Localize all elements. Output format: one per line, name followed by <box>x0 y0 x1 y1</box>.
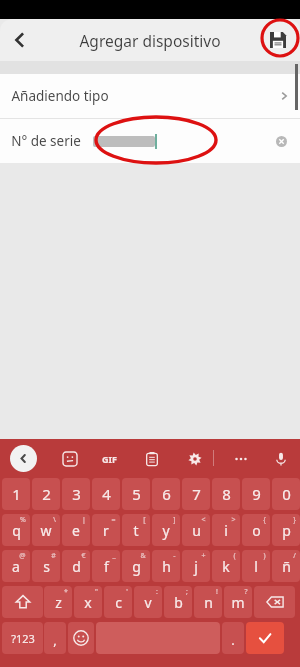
staticText: u <box>192 521 201 540</box>
button[interactable]: h <box>152 550 180 582</box>
button[interactable]: Back <box>0 20 40 60</box>
button[interactable]: Shift <box>2 586 43 618</box>
button[interactable]: m <box>224 586 252 618</box>
staticText: _ <box>112 551 116 561</box>
button[interactable]: 3 <box>62 478 90 510</box>
staticText: ? <box>244 587 248 597</box>
button[interactable]: f <box>92 550 120 582</box>
button[interactable]: x <box>74 586 102 618</box>
button[interactable]: 7 <box>182 478 210 510</box>
button[interactable]: y <box>152 514 180 546</box>
button[interactable]: d <box>62 550 90 582</box>
staticText: y <box>162 521 170 540</box>
staticText: Añadiendo tipo <box>11 87 109 105</box>
button[interactable]: n <box>194 586 222 618</box>
button[interactable]: 1 <box>2 478 30 510</box>
button[interactable]: N° de serie <box>0 119 300 163</box>
button[interactable]: ?123 <box>2 622 43 654</box>
staticText: z <box>55 593 62 612</box>
button[interactable]: w <box>32 514 60 546</box>
button[interactable]: l <box>242 550 270 582</box>
button[interactable]: 5 <box>122 478 150 510</box>
staticText: j <box>194 557 198 576</box>
button[interactable]: c <box>104 586 132 618</box>
button[interactable]: a <box>2 550 30 582</box>
staticText: 6 <box>162 484 171 504</box>
button[interactable]: j <box>182 550 210 582</box>
button[interactable]: GIF <box>96 446 122 472</box>
button[interactable]: Voice input <box>268 446 294 472</box>
staticText: < <box>201 515 206 525</box>
staticText: w <box>40 521 52 540</box>
button[interactable]: Clipboard <box>139 446 165 472</box>
staticText: ] <box>173 515 176 525</box>
button[interactable]: More options <box>228 446 254 472</box>
staticText: , <box>53 631 57 649</box>
staticText: a <box>12 557 20 576</box>
button[interactable]: Clear <box>270 130 292 152</box>
staticText: e <box>72 521 80 540</box>
button[interactable]: Collapse toolbar <box>10 445 37 472</box>
button[interactable]: . <box>222 622 244 654</box>
button[interactable]: Emoji <box>68 622 94 654</box>
button[interactable]: t <box>122 514 150 546</box>
button[interactable]: q <box>2 514 30 546</box>
staticText: c <box>115 593 122 612</box>
button[interactable]: z <box>44 586 72 618</box>
button[interactable]: Añadiendo tipo <box>0 74 300 118</box>
staticText: > <box>231 515 236 525</box>
button[interactable]: Stickers <box>57 446 83 472</box>
staticText: @ <box>19 551 26 561</box>
staticText: r <box>103 521 109 540</box>
staticText: 2 <box>42 484 51 504</box>
button[interactable]: 2 <box>32 478 60 510</box>
button[interactable]: 4 <box>92 478 120 510</box>
staticText: } <box>293 515 296 525</box>
staticText: k <box>222 557 230 576</box>
staticText: % <box>20 515 26 525</box>
staticText: * <box>64 587 68 597</box>
button[interactable]: 9 <box>242 478 270 510</box>
button[interactable]: o <box>242 514 270 546</box>
staticText: 3 <box>72 484 81 504</box>
staticText: f <box>104 557 109 576</box>
staticText: ! <box>216 587 218 597</box>
staticText: & <box>140 551 146 561</box>
staticText: 8 <box>222 484 231 504</box>
button[interactable]: 8 <box>212 478 240 510</box>
button[interactable]: k <box>212 550 240 582</box>
staticText: 9 <box>252 484 261 504</box>
button[interactable]: Enter <box>246 622 284 654</box>
button[interactable]: 0 <box>272 478 300 510</box>
staticText: \ <box>53 515 56 525</box>
staticText: 5 <box>132 484 141 504</box>
button[interactable]: r <box>92 514 120 546</box>
staticText: ?123 <box>11 631 35 646</box>
button[interactable]: i <box>212 514 240 546</box>
button[interactable]: 6 <box>152 478 180 510</box>
button[interactable]: Backspace <box>254 586 295 618</box>
staticText: € <box>81 551 86 561</box>
button[interactable]: e <box>62 514 90 546</box>
staticText: q <box>12 521 21 540</box>
staticText: [ <box>143 515 146 525</box>
staticText: n <box>204 593 213 612</box>
button[interactable]: u <box>182 514 210 546</box>
staticText: p <box>282 521 291 540</box>
button[interactable]: ñ <box>272 550 300 582</box>
button[interactable]: Save <box>258 20 298 60</box>
button[interactable]: s <box>32 550 60 582</box>
staticText: : <box>156 587 158 597</box>
button[interactable]: Settings <box>182 446 208 472</box>
staticText: Agregar dispositivo <box>79 30 221 51</box>
button[interactable]: g <box>122 550 150 582</box>
button[interactable]: b <box>164 586 192 618</box>
staticText: . <box>231 631 235 649</box>
staticText: 1 <box>12 484 21 504</box>
staticText: m <box>231 593 245 612</box>
button[interactable]: p <box>272 514 300 546</box>
button[interactable]: , <box>44 622 66 654</box>
staticText: 4 <box>102 484 111 504</box>
button[interactable]: v <box>134 586 162 618</box>
